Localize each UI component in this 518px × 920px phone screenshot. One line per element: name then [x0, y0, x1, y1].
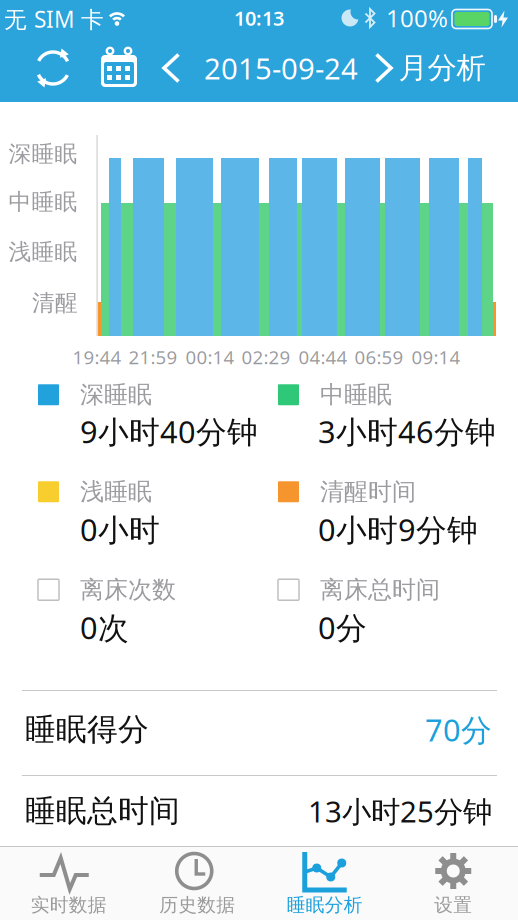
- staticText: 睡眠分析: [287, 893, 363, 916]
- staticText: 离床总时间: [320, 575, 440, 604]
- staticText: 中睡眠: [8, 188, 77, 216]
- staticText: 清醒时间: [320, 477, 416, 506]
- staticText: 0分: [318, 607, 367, 648]
- staticText: 0小时: [80, 509, 160, 550]
- staticText: 清醒: [32, 289, 78, 317]
- staticText: 中睡眠: [320, 380, 392, 409]
- staticText: 21:59: [128, 345, 177, 369]
- staticText: 9小时40分钟: [80, 411, 258, 452]
- button[interactable]: 睡眠分析: [259, 846, 388, 920]
- button[interactable]: 历史数据: [129, 846, 259, 920]
- staticText: 设置: [434, 893, 472, 916]
- staticText: 0次: [80, 607, 129, 648]
- staticText: 0小时9分钟: [318, 509, 478, 550]
- staticText: 04:44: [298, 345, 347, 369]
- staticText: 睡眠得分: [25, 711, 149, 748]
- staticText: 100%: [386, 2, 448, 34]
- staticText: 浅睡眠: [80, 477, 152, 506]
- staticText: 历史数据: [159, 893, 235, 916]
- button[interactable]: 实时数据: [0, 846, 129, 920]
- button[interactable]: 睡眠得分: [0, 691, 518, 775]
- staticText: 09:14: [411, 345, 460, 369]
- staticText: 19:44: [72, 345, 121, 369]
- staticText: 70分: [425, 709, 492, 750]
- button[interactable]: [30, 45, 76, 91]
- staticText: 实时数据: [31, 893, 107, 916]
- button[interactable]: [158, 53, 184, 83]
- staticText: 月分析: [398, 50, 485, 86]
- button[interactable]: [371, 53, 397, 83]
- staticText: 10:13: [234, 5, 284, 31]
- staticText: 13小时25分钟: [308, 791, 492, 830]
- staticText: 深睡眠: [80, 380, 152, 409]
- staticText: 00:14: [185, 345, 234, 369]
- staticText: 离床次数: [80, 575, 176, 604]
- staticText: 2015-09-24: [204, 48, 358, 87]
- button[interactable]: [97, 46, 141, 90]
- staticText: 无 SIM 卡: [4, 4, 104, 34]
- staticText: 深睡眠: [8, 140, 77, 168]
- staticText: 浅睡眠: [8, 238, 77, 266]
- button[interactable]: 月分析: [398, 50, 485, 86]
- staticText: 02:29: [241, 345, 290, 369]
- button[interactable]: 设置: [388, 846, 518, 920]
- staticText: 3小时46分钟: [318, 411, 496, 452]
- staticText: 06:59: [354, 345, 403, 369]
- button[interactable]: 睡眠总时间: [0, 776, 518, 846]
- staticText: 睡眠总时间: [25, 792, 180, 830]
